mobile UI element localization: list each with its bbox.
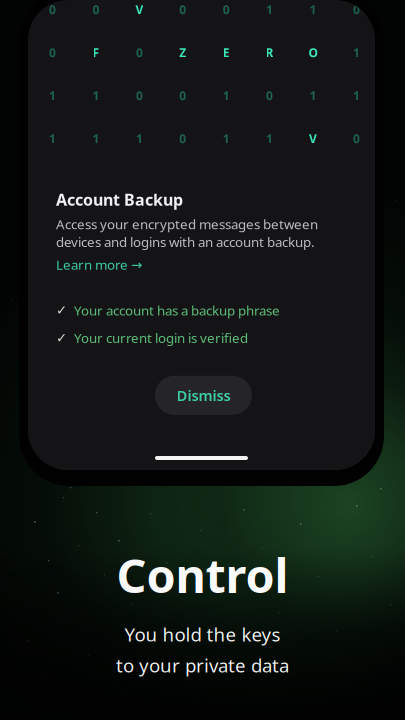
- staticText: 0: [179, 1, 186, 17]
- staticText: 0: [49, 44, 56, 60]
- staticText: 0: [179, 87, 186, 103]
- staticText: 1: [92, 87, 99, 103]
- staticText: 0: [92, 1, 99, 17]
- staticText: Learn more →: [56, 256, 142, 273]
- staticText: Access your encrypted messages between: [56, 215, 318, 233]
- button[interactable]: Learn more →: [56, 256, 142, 273]
- staticText: Control: [116, 544, 288, 606]
- staticText: 1: [49, 87, 56, 103]
- staticText: 0: [266, 87, 273, 103]
- staticText: 0: [223, 1, 230, 17]
- staticText: 0: [179, 130, 186, 146]
- staticText: 0: [136, 44, 143, 60]
- staticText: R: [266, 44, 274, 60]
- staticText: ✓: [56, 303, 67, 318]
- staticText: Dismiss: [176, 385, 230, 405]
- button[interactable]: Dismiss: [155, 376, 252, 415]
- staticText: 0: [49, 1, 56, 17]
- staticText: 1: [49, 130, 56, 146]
- staticText: 1: [223, 87, 230, 103]
- staticText: 1: [136, 130, 143, 146]
- staticText: 0: [353, 130, 360, 146]
- staticText: 1: [266, 130, 273, 146]
- staticText: You hold the keys: [124, 622, 280, 647]
- staticText: devices and logins with an account backu…: [56, 233, 315, 251]
- staticText: V: [309, 130, 317, 146]
- staticText: 1: [309, 1, 316, 17]
- staticText: to your private data: [116, 653, 289, 678]
- staticText: ✓: [56, 330, 67, 345]
- staticText: 1: [266, 1, 273, 17]
- staticText: Account Backup: [56, 189, 183, 210]
- staticText: 1: [92, 130, 99, 146]
- staticText: V: [135, 1, 143, 17]
- staticText: Your current login is verified: [74, 329, 248, 347]
- staticText: 1: [353, 44, 360, 60]
- staticText: F: [92, 44, 99, 60]
- staticText: Z: [179, 44, 186, 60]
- staticText: 1: [223, 130, 230, 146]
- staticText: 1: [353, 87, 360, 103]
- staticText: Your account has a backup phrase: [74, 301, 280, 319]
- staticText: 0: [353, 1, 360, 17]
- staticText: O: [308, 44, 317, 60]
- staticText: 1: [309, 87, 316, 103]
- staticText: 0: [136, 87, 143, 103]
- staticText: E: [223, 44, 230, 60]
